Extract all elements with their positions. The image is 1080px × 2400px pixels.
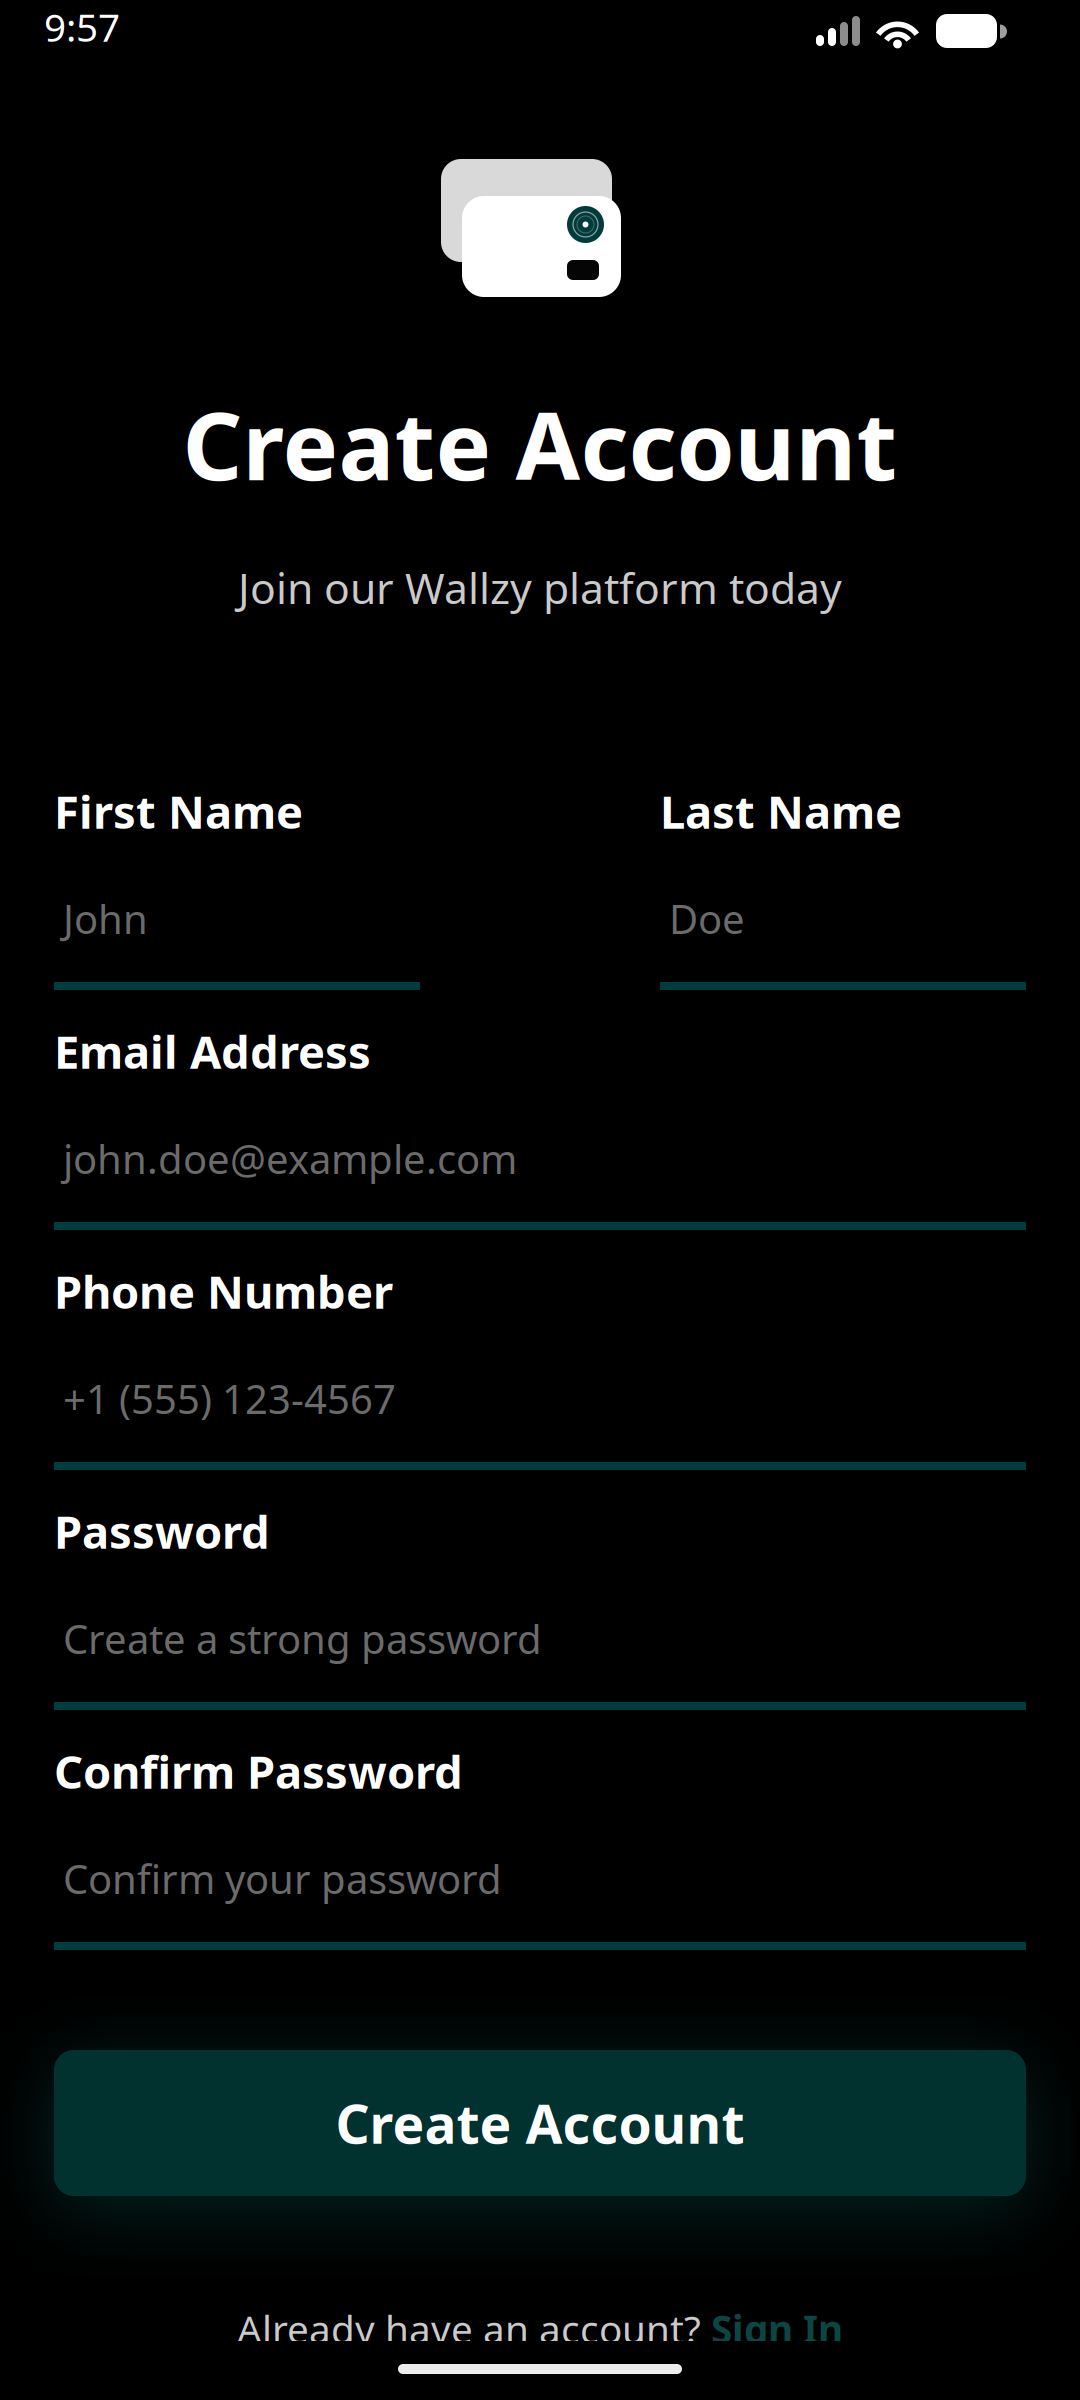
staticText: Email Address (54, 1021, 371, 1081)
staticText: john.doe@example.com (63, 1132, 517, 1185)
button[interactable]: Create Account (54, 2050, 1026, 2196)
staticText: Confirm your password (63, 1852, 502, 1905)
staticText: Already have an account? (237, 2303, 711, 2354)
staticText: Sign In (711, 2303, 843, 2354)
button[interactable]: Confirm Password (54, 1755, 1026, 1955)
staticText: Create a strong password (63, 1612, 542, 1665)
staticText: Confirm Password (54, 1741, 463, 1801)
staticText: +1 (555) 123-4567 (63, 1372, 396, 1425)
staticText: Join our Wallzy platform today (238, 559, 842, 616)
button[interactable]: Last Name (660, 795, 1026, 995)
staticText: Phone Number (54, 1261, 393, 1321)
staticText: Last Name (660, 781, 902, 841)
button[interactable]: Phone Number (54, 1275, 1026, 1475)
staticText: John (63, 892, 148, 945)
staticText: Create Account (335, 2088, 744, 2158)
staticText: Doe (669, 892, 745, 945)
button[interactable]: Sign In (711, 2303, 843, 2354)
button[interactable]: First Name (54, 795, 420, 995)
staticText: 9:57 (44, 1, 120, 52)
button[interactable]: Email Address (54, 1035, 1026, 1235)
staticText: First Name (54, 781, 303, 841)
button[interactable]: Password (54, 1515, 1026, 1715)
staticText: Create Account (182, 382, 897, 506)
staticText: Password (54, 1501, 270, 1561)
